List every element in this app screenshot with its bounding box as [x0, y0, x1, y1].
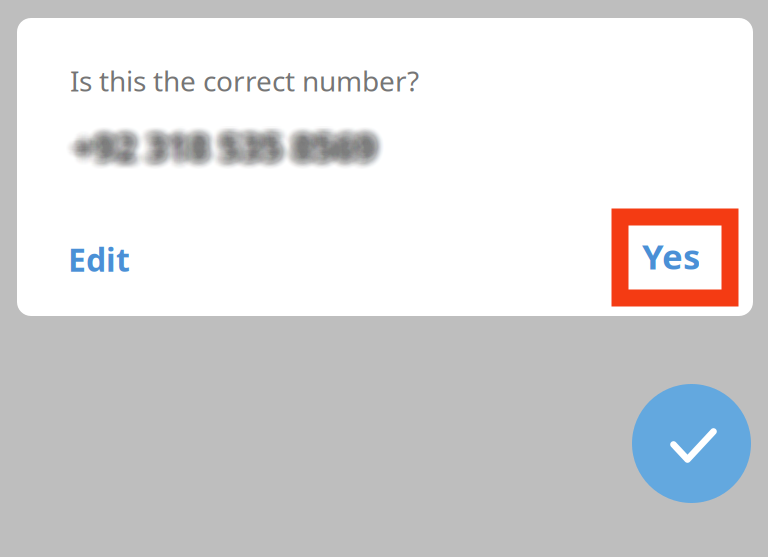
staticText: +92 318 535 8569	[65, 116, 368, 166]
staticText: +92 318 535 8569	[67, 120, 370, 169]
staticText: +92 318 535 8569	[82, 113, 385, 163]
staticText: +92 318 535 8569	[81, 119, 384, 168]
staticText: Edit	[68, 238, 130, 280]
staticText: +92 318 535 8569	[76, 123, 379, 173]
staticText: +92 318 535 8569	[70, 113, 373, 163]
staticText: +92 318 535 8569	[80, 120, 383, 169]
staticText: +92 318 535 8569	[77, 130, 380, 179]
staticText: +92 318 535 8569	[80, 115, 383, 165]
staticText: +92 318 535 8569	[77, 127, 380, 177]
staticText: +92 318 535 8569	[71, 125, 374, 175]
staticText: +92 318 535 8569	[80, 129, 383, 178]
staticText: +92 318 535 8569	[67, 131, 370, 180]
staticText: +92 318 535 8569	[67, 122, 370, 172]
staticText: +92 318 535 8569	[72, 121, 375, 170]
staticText: +92 318 535 8569	[78, 129, 381, 178]
staticText: +92 318 535 8569	[67, 113, 370, 163]
button[interactable]: Edit	[49, 217, 149, 301]
staticText: +92 318 535 8569	[81, 114, 384, 164]
staticText: +92 318 535 8569	[80, 126, 383, 176]
staticText: +92 318 535 8569	[72, 127, 375, 177]
staticText: +92 318 535 8569	[74, 124, 377, 174]
staticText: +92 318 535 8569	[75, 130, 378, 179]
staticText: +92 318 535 8569	[69, 122, 372, 172]
staticText: +92 318 535 8569	[65, 113, 368, 163]
staticText: +92 318 535 8569	[67, 124, 370, 174]
staticText: +92 318 535 8569	[82, 131, 385, 180]
staticText: +92 318 535 8569	[64, 116, 367, 166]
staticText: +92 318 535 8569	[66, 120, 369, 169]
staticText: +92 318 535 8569	[78, 126, 381, 176]
staticText: +92 318 535 8569	[70, 131, 373, 180]
staticText: +92 318 535 8569	[65, 121, 368, 170]
staticText: +92 318 535 8569	[72, 125, 375, 175]
staticText: +92 318 535 8569	[78, 131, 381, 180]
staticText: +92 318 535 8569	[75, 120, 378, 169]
staticText: +92 318 535 8569	[72, 126, 375, 176]
staticText: +92 318 535 8569	[64, 125, 367, 175]
staticText: +92 318 535 8569	[75, 125, 378, 175]
staticText: +92 318 535 8569	[71, 113, 374, 163]
staticText: +92 318 535 8569	[66, 122, 369, 172]
staticText: +92 318 535 8569	[80, 114, 383, 164]
staticText: +92 318 535 8569	[81, 122, 384, 172]
staticText: +92 318 535 8569	[80, 130, 383, 179]
staticText: +92 318 535 8569	[65, 122, 368, 172]
staticText: +92 318 535 8569	[70, 123, 373, 173]
staticText: +92 318 535 8569	[81, 130, 384, 179]
staticText: +92 318 535 8569	[72, 130, 375, 179]
staticText: +92 318 535 8569	[67, 116, 370, 166]
staticText: +92 318 535 8569	[75, 124, 378, 174]
staticText: +92 318 535 8569	[81, 116, 384, 166]
staticText: +92 318 535 8569	[74, 114, 377, 164]
staticText: +92 318 535 8569	[81, 123, 384, 173]
staticText: +92 318 535 8569	[73, 129, 376, 178]
staticText: +92 318 535 8569	[71, 127, 374, 177]
staticText: +92 318 535 8569	[73, 113, 376, 163]
staticText: +92 318 535 8569	[66, 121, 369, 170]
staticText: +92 318 535 8569	[82, 121, 385, 170]
staticText: +92 318 535 8569	[74, 116, 377, 166]
button[interactable]: Confirm	[632, 384, 751, 503]
staticText: +92 318 535 8569	[73, 118, 376, 167]
staticText: +92 318 535 8569	[77, 131, 380, 180]
staticText: +92 318 535 8569	[82, 123, 385, 173]
staticText: +92 318 535 8569	[81, 127, 384, 177]
staticText: +92 318 535 8569	[75, 129, 378, 178]
staticText: +92 318 535 8569	[80, 118, 383, 167]
staticText: Is this the correct number?	[70, 62, 419, 99]
staticText: Yes	[642, 233, 700, 279]
staticText: +92 318 535 8569	[78, 125, 381, 175]
staticText: +92 318 535 8569	[76, 118, 379, 167]
staticText: +92 318 535 8569	[65, 127, 368, 177]
button[interactable]: Yes	[621, 212, 721, 300]
staticText: +92 318 535 8569	[65, 129, 368, 178]
staticText: +92 318 535 8569	[71, 118, 374, 167]
staticText: +92 318 535 8569	[74, 119, 377, 168]
staticText: +92 318 535 8569	[71, 114, 374, 164]
staticText: +92 318 535 8569	[70, 119, 373, 168]
staticText: +92 318 535 8569	[76, 124, 379, 174]
staticText: +92 318 535 8569	[67, 118, 370, 167]
staticText: +92 318 535 8569	[77, 120, 380, 169]
staticText: +92 318 535 8569	[72, 119, 375, 168]
staticText: +92 318 535 8569	[73, 123, 376, 173]
staticText: +92 318 535 8569	[80, 122, 383, 172]
staticText: +92 318 535 8569	[69, 121, 372, 170]
staticText: +92 318 535 8569	[70, 124, 373, 174]
staticText: +92 318 535 8569	[80, 113, 383, 163]
staticText: +92 318 535 8569	[76, 120, 379, 169]
staticText: +92 318 535 8569	[67, 129, 370, 178]
staticText: +92 318 535 8569	[66, 125, 369, 175]
staticText: +92 318 535 8569	[72, 122, 375, 172]
staticText: +92 318 535 8569	[80, 123, 383, 173]
staticText: +92 318 535 8569	[73, 121, 376, 170]
staticText: +92 318 535 8569	[64, 127, 367, 177]
staticText: +92 318 535 8569	[72, 116, 375, 166]
staticText: +92 318 535 8569	[77, 113, 380, 163]
staticText: +92 318 535 8569	[74, 113, 377, 163]
staticText: +92 318 535 8569	[78, 127, 381, 177]
staticText: +92 318 535 8569	[70, 121, 373, 170]
staticText: +92 318 535 8569	[74, 123, 377, 173]
staticText: +92 318 535 8569	[74, 122, 377, 172]
